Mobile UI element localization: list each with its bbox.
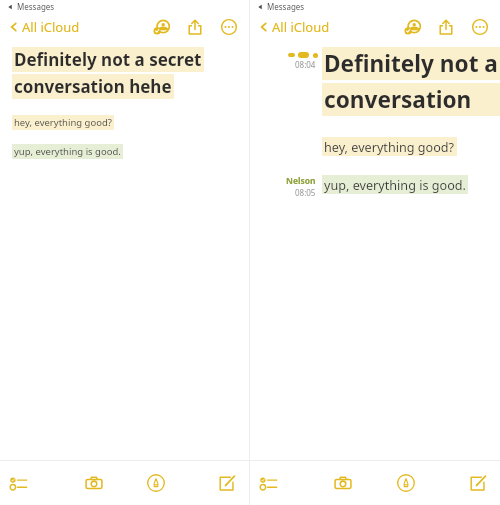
button[interactable]: Markup (374, 461, 437, 505)
button[interactable]: Markup (125, 461, 187, 505)
staticText: All iCloud (22, 18, 80, 36)
button[interactable]: Compose (437, 461, 486, 505)
button[interactable]: Compose (187, 461, 235, 505)
button[interactable]: Collaborate (399, 14, 425, 40)
staticText: 08:04 (295, 59, 316, 70)
button[interactable]: Camera (312, 461, 374, 505)
staticText: Messages (17, 1, 55, 12)
staticText: Nelson (286, 175, 316, 187)
staticText: Messages (267, 1, 305, 12)
button[interactable]: Collaborate (148, 14, 174, 40)
button[interactable]: Share (433, 14, 459, 40)
staticText: conversation hehe (14, 75, 172, 98)
staticText: Definitely not a secret (324, 48, 498, 79)
button[interactable]: Checklist (10, 461, 63, 505)
staticText: conversation hehe (324, 84, 498, 115)
staticText: 08:05 (295, 187, 316, 198)
staticText: yup, everything is good. (14, 145, 121, 158)
button[interactable]: Camera (63, 461, 125, 505)
staticText: hey, everything good? (14, 116, 112, 129)
button[interactable]: More (467, 14, 493, 40)
button[interactable]: Checklist (260, 461, 312, 505)
staticText: All iCloud (272, 18, 330, 36)
button[interactable]: Share (182, 14, 208, 40)
button[interactable]: More (216, 14, 242, 40)
staticText: hey, everything good? (324, 138, 455, 155)
button[interactable]: All iCloud (257, 16, 332, 38)
staticText: Definitely not a secret (14, 48, 202, 71)
button[interactable]: All iCloud (7, 16, 82, 38)
staticText: yup, everything is good. (324, 176, 466, 193)
